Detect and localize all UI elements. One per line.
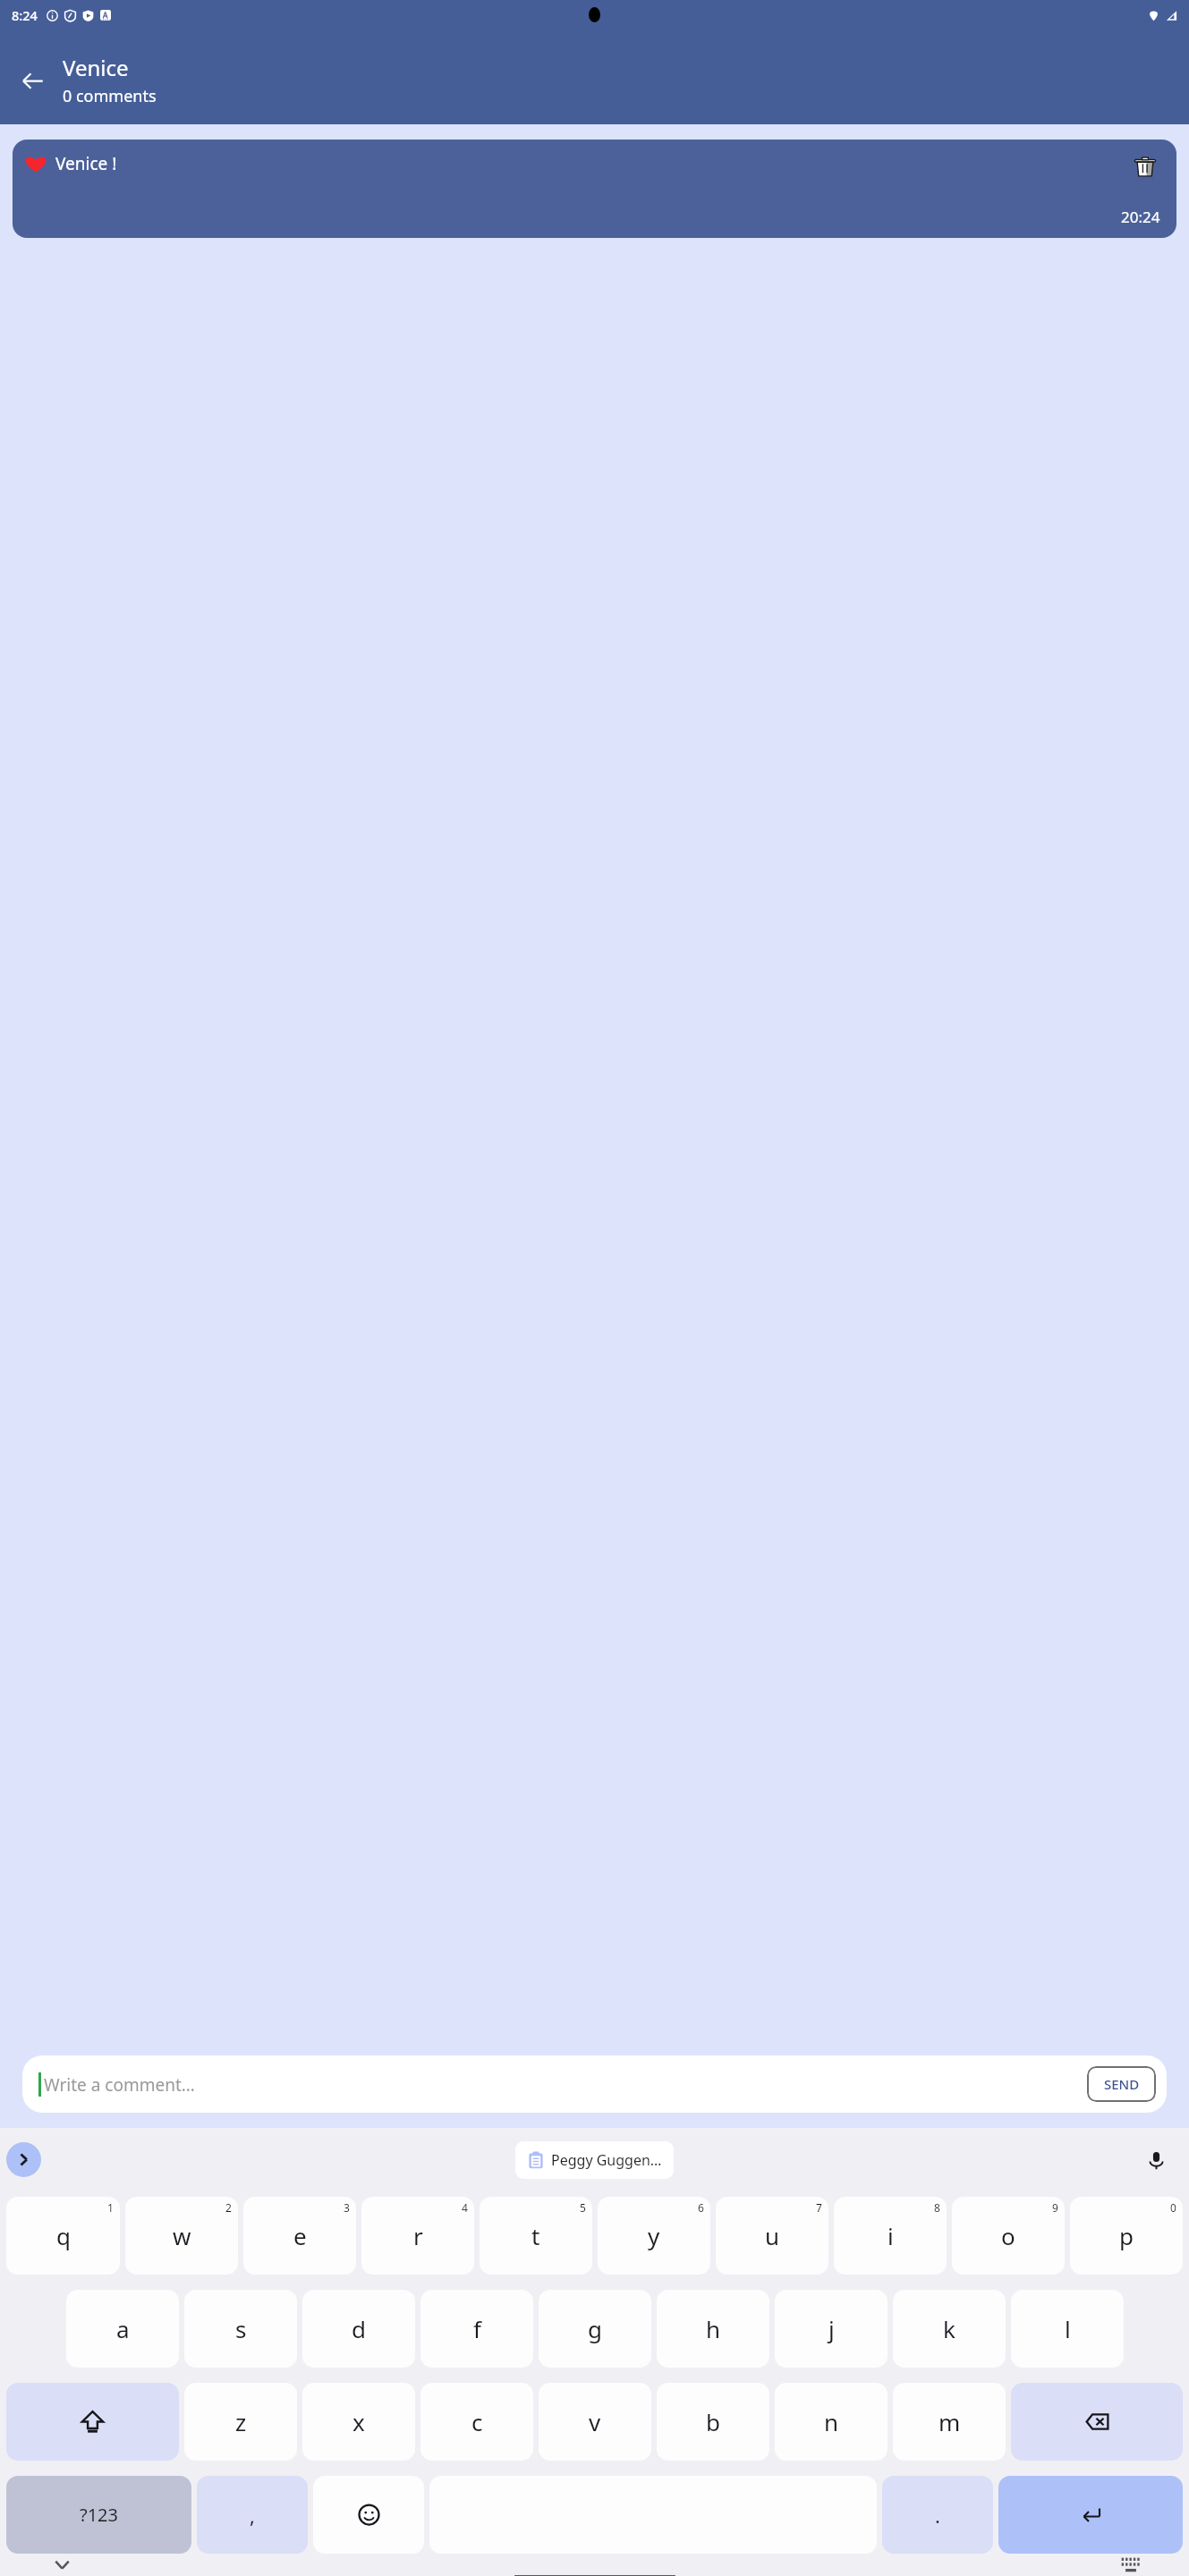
staticText: 4 [462,2200,468,2215]
staticText: b [706,2406,720,2437]
staticText: 6 [698,2200,704,2215]
staticText: w [173,2220,191,2251]
staticText: 1 [107,2200,114,2215]
button[interactable]: d [302,2290,415,2368]
staticText: o [1001,2220,1015,2251]
button[interactable]: t [480,2197,592,2275]
button[interactable]: p [1070,2197,1183,2275]
staticText: i [888,2220,894,2251]
staticText: v [589,2406,601,2437]
staticText: 0 comments [63,85,157,107]
staticText: Write a comment… [44,2073,195,2097]
staticText: j [828,2313,835,2344]
button[interactable]: Delete comment [1130,152,1160,182]
button[interactable]: y [598,2197,710,2275]
button[interactable]: Switch keyboard [1112,2554,1150,2576]
button[interactable]: Back [7,55,57,106]
staticText: a [116,2313,130,2344]
staticText: t [531,2220,540,2251]
staticText: , [250,2502,255,2529]
button[interactable]: , [197,2476,308,2554]
staticText: 7 [816,2200,822,2215]
staticText: 8 [934,2200,940,2215]
button[interactable]: m [893,2383,1006,2461]
button[interactable]: o [952,2197,1065,2275]
staticText: Peggy Guggen… [551,2150,662,2170]
staticText: ?123 [80,2503,118,2527]
staticText: x [352,2406,365,2437]
staticText: 3 [344,2200,350,2215]
staticText: SEND [1104,2075,1140,2093]
button[interactable]: Voice input [1139,2143,1173,2177]
button[interactable]: Shift [6,2383,179,2461]
button[interactable]: q [6,2197,120,2275]
button[interactable]: g [539,2290,651,2368]
button[interactable]: c [420,2383,533,2461]
staticText: u [765,2220,780,2251]
button[interactable]: v [539,2383,651,2461]
staticText: 8:24 [12,6,38,24]
staticText: k [943,2313,955,2344]
button[interactable]: x [302,2383,415,2461]
button[interactable]: Expand toolbar [6,2142,41,2177]
staticText: c [471,2406,483,2437]
button[interactable]: SEND [1087,2066,1156,2102]
staticText: . [935,2502,940,2529]
button[interactable]: . [882,2476,993,2554]
button[interactable]: w [125,2197,238,2275]
staticText: e [293,2220,307,2251]
button[interactable]: a [66,2290,179,2368]
button[interactable]: i [834,2197,947,2275]
button[interactable]: Write a comment… [38,2055,1087,2113]
staticText: g [588,2313,602,2344]
button[interactable]: n [775,2383,888,2461]
staticText: s [235,2313,247,2344]
staticText: Venice ! [55,152,117,175]
staticText: n [824,2406,839,2437]
button[interactable]: u [716,2197,828,2275]
button[interactable]: ?123 [6,2476,191,2554]
button[interactable]: Hide keyboard [43,2554,81,2576]
button[interactable]: s [184,2290,297,2368]
staticText: 5 [580,2200,586,2215]
button[interactable]: e [243,2197,356,2275]
button[interactable]: b [657,2383,769,2461]
staticText: y [648,2220,660,2251]
button[interactable]: Venice ! [13,140,1176,238]
button[interactable]: z [184,2383,297,2461]
button[interactable]: f [420,2290,533,2368]
staticText: p [1119,2220,1134,2251]
staticText: h [706,2313,721,2344]
staticText: r [413,2220,423,2251]
staticText: d [352,2313,366,2344]
staticText: q [56,2220,71,2251]
button[interactable]: Enter [998,2476,1183,2554]
staticText: f [473,2313,481,2344]
staticText: Venice [63,53,129,82]
staticText: l [1065,2313,1071,2344]
staticText: m [938,2406,961,2437]
staticText: 2 [225,2200,232,2215]
button[interactable]: Backspace [1011,2383,1183,2461]
staticText: 20:24 [1121,207,1160,227]
staticText: 0 [1170,2200,1176,2215]
staticText: 9 [1052,2200,1058,2215]
button[interactable]: j [775,2290,888,2368]
button[interactable]: l [1011,2290,1124,2368]
button[interactable]: h [657,2290,769,2368]
button[interactable]: Emoji [313,2476,424,2554]
button[interactable]: r [361,2197,474,2275]
staticText: z [235,2406,247,2437]
button[interactable]: k [893,2290,1006,2368]
button[interactable]: Peggy Guggen… [515,2141,674,2179]
